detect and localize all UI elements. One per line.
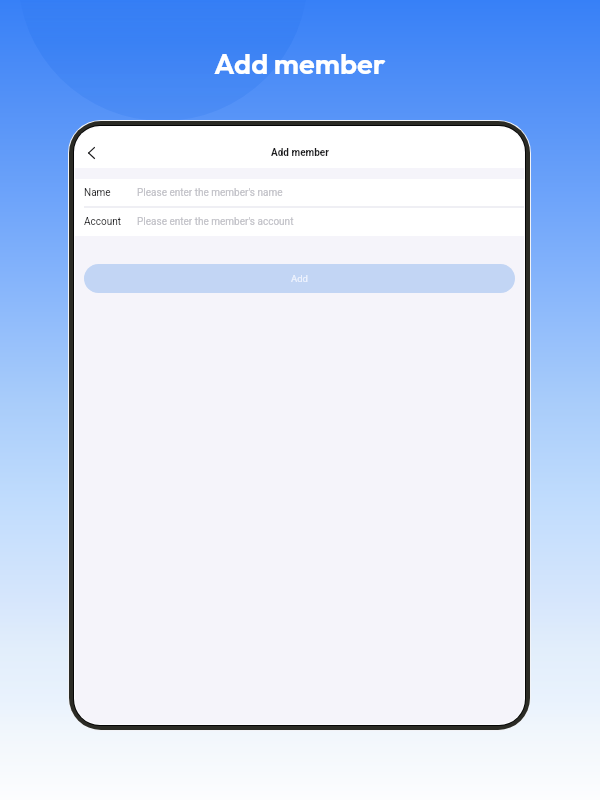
staticText: Please enter the member's name (137, 187, 283, 199)
staticText: Account (84, 216, 122, 228)
staticText: Add member (271, 147, 329, 159)
button[interactable]: Name (75, 179, 524, 206)
staticText: Name (84, 187, 111, 199)
button[interactable]: Back (77, 139, 105, 167)
button[interactable]: Add (84, 264, 515, 293)
staticText: Please enter the member's account (137, 216, 294, 228)
staticText: Add (291, 273, 308, 284)
button[interactable]: Account (75, 208, 524, 236)
staticText: Add member (214, 45, 386, 82)
